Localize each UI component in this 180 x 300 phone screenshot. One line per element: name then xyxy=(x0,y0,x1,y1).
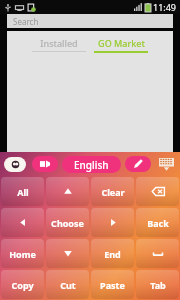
staticText: End xyxy=(104,248,121,260)
staticText: Paste xyxy=(100,279,125,291)
button[interactable]: Choose xyxy=(46,208,89,237)
staticText: Clear xyxy=(101,186,125,198)
staticText: Search xyxy=(13,16,39,27)
staticText: Tab xyxy=(150,279,166,291)
button[interactable]: Home xyxy=(1,239,44,268)
button[interactable]: Cut xyxy=(46,270,89,299)
button[interactable]: Left xyxy=(1,208,44,237)
button[interactable]: English xyxy=(62,156,121,173)
staticText: All xyxy=(17,186,29,198)
button[interactable]: Right xyxy=(91,208,134,237)
staticText: Copy xyxy=(11,279,34,291)
button[interactable]: Installed xyxy=(28,37,90,52)
staticText: GO Market xyxy=(98,37,145,49)
staticText: Choose xyxy=(51,217,84,229)
button[interactable]: Paste xyxy=(91,270,134,299)
button[interactable]: Emoji xyxy=(4,157,26,172)
button[interactable]: Theme xyxy=(125,156,151,172)
button[interactable]: End xyxy=(91,239,134,268)
staticText: Cut xyxy=(60,279,76,291)
staticText: Home xyxy=(9,248,36,260)
button[interactable]: Clear xyxy=(91,177,134,206)
staticText: English xyxy=(74,158,109,172)
button[interactable]: Up xyxy=(46,177,89,206)
button[interactable]: Copy xyxy=(1,270,44,299)
staticText: 11:49 xyxy=(153,1,177,13)
button[interactable]: Back xyxy=(136,208,179,237)
button[interactable]: Tab xyxy=(136,270,179,299)
button[interactable]: Delete xyxy=(136,177,179,206)
button[interactable]: All xyxy=(1,177,44,206)
button[interactable]: GO Market xyxy=(90,37,152,53)
staticText: Back xyxy=(147,217,169,229)
button[interactable]: Search xyxy=(7,14,173,28)
staticText: Installed xyxy=(40,37,78,49)
button[interactable]: Voice input xyxy=(32,156,58,172)
button[interactable]: Space xyxy=(136,239,179,268)
button[interactable]: Hide keyboard xyxy=(156,156,176,173)
button[interactable]: Down xyxy=(46,239,89,268)
